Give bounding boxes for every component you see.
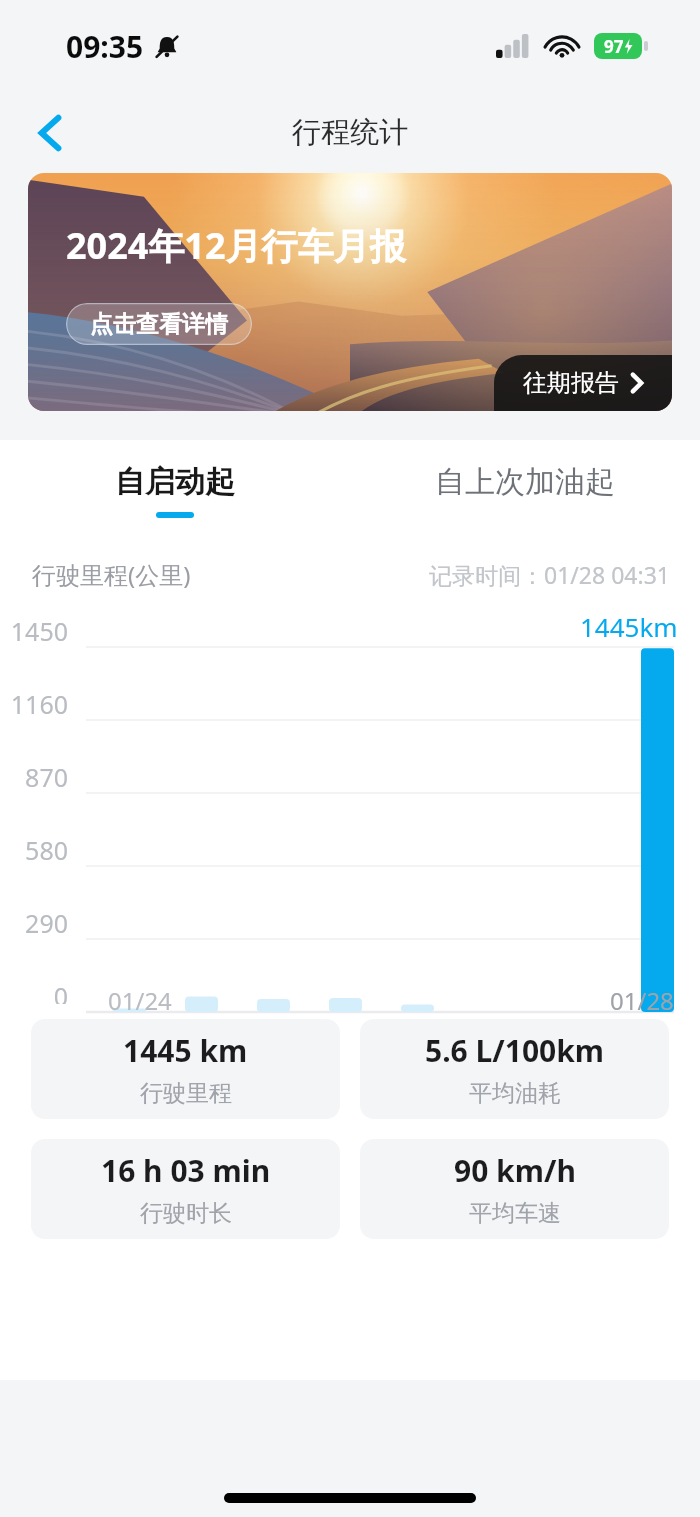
staticText: 记录时间：01/28 04:31 xyxy=(429,559,670,590)
staticText: 行驶里程 xyxy=(140,1079,232,1108)
button[interactable]: 5.6 L/100km xyxy=(360,1019,669,1119)
button[interactable]: Back xyxy=(22,105,78,161)
staticText: 平均车速 xyxy=(469,1199,561,1228)
staticText: 自启动起 xyxy=(115,463,235,501)
button[interactable]: 点击查看详情 xyxy=(66,303,252,345)
staticText: 870 xyxy=(0,760,68,794)
button[interactable]: 2024年12月行车月报 xyxy=(28,173,672,411)
staticText: 16 h 03 min xyxy=(101,1150,271,1191)
staticText: 97 xyxy=(604,35,624,58)
staticText: 290 xyxy=(0,906,68,940)
button[interactable]: 往期报告 xyxy=(494,355,672,411)
staticText: 1450 xyxy=(0,614,68,648)
staticText: 点击查看详情 xyxy=(90,310,228,339)
staticText: 行驶时长 xyxy=(140,1199,232,1228)
button[interactable]: 90 km/h xyxy=(360,1139,669,1239)
button[interactable]: 自上次加油起 xyxy=(350,440,700,540)
staticText: 1445km xyxy=(580,609,678,644)
staticText: 行程统计 xyxy=(292,114,408,151)
staticText: 09:35 xyxy=(66,26,144,67)
staticText: 580 xyxy=(0,833,68,867)
staticText: 90 km/h xyxy=(454,1150,576,1191)
staticText: 平均油耗 xyxy=(469,1079,561,1108)
button[interactable]: 自启动起 xyxy=(0,440,350,540)
staticText: 2024年12月行车月报 xyxy=(66,221,406,270)
staticText: 01/28 xyxy=(610,984,674,1017)
staticText: 5.6 L/100km xyxy=(425,1030,605,1071)
button[interactable]: 1445 km xyxy=(31,1019,340,1119)
staticText: 行驶里程(公里) xyxy=(32,558,191,591)
staticText: 1160 xyxy=(0,687,68,721)
button[interactable]: 16 h 03 min xyxy=(31,1139,340,1239)
staticText: 01/24 xyxy=(108,984,172,1017)
staticText: 自上次加油起 xyxy=(435,463,615,501)
staticText: 1445 km xyxy=(123,1030,248,1071)
staticText: 0 xyxy=(0,979,68,1004)
staticText: 往期报告 xyxy=(523,368,619,398)
